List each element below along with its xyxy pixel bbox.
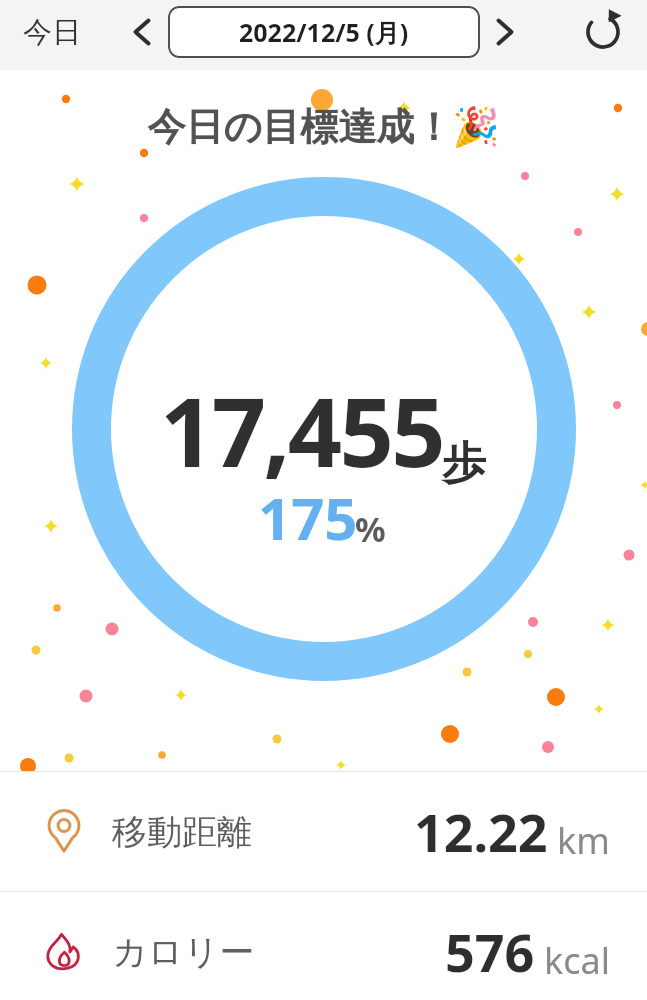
staticText: カロリー (112, 930, 255, 974)
staticText: 576 (445, 916, 535, 987)
button[interactable]: Next day (473, 0, 537, 64)
staticText: 17,455 (160, 365, 443, 494)
button[interactable]: 2022/12/5 (月) (168, 6, 480, 58)
staticText: kcal (544, 936, 610, 985)
staticText: 2022/12/5 (月) (239, 15, 409, 49)
button[interactable]: 移動距離 (0, 772, 647, 891)
staticText: km (557, 816, 610, 865)
staticText: 移動距離 (112, 810, 252, 854)
staticText: 175 (258, 478, 358, 557)
staticText: % (355, 506, 386, 552)
staticText: 12.22 (414, 796, 548, 867)
button[interactable]: カロリー (0, 892, 647, 1000)
button[interactable]: Previous day (110, 0, 174, 64)
staticText: 今日の目標達成！🎉 (147, 103, 500, 151)
button[interactable]: Refresh (571, 0, 635, 64)
staticText: 歩 (442, 436, 486, 491)
button[interactable]: 今日 (0, 0, 104, 64)
staticText: 今日 (23, 14, 81, 51)
